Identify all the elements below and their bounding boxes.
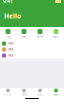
staticText: Title — [8, 54, 14, 57]
button[interactable]: Me — [48, 89, 64, 96]
button[interactable]: Stats — [32, 89, 48, 96]
staticText: Hello — [4, 12, 21, 20]
staticText: Scan — [21, 35, 26, 38]
button[interactable]: More — [48, 29, 64, 38]
staticText: Stats — [37, 93, 42, 96]
button[interactable]: Home — [0, 89, 16, 96]
staticText: 9:41 — [3, 0, 13, 5]
button[interactable]: Title — [0, 52, 64, 58]
button[interactable]: Pay — [0, 29, 16, 38]
staticText: More — [52, 35, 59, 38]
button[interactable]: Scan — [16, 29, 32, 38]
staticText: Cards — [20, 93, 27, 96]
staticText: Title — [8, 48, 14, 51]
staticText: Title — [8, 42, 14, 45]
button[interactable]: Title — [0, 40, 64, 46]
staticText: ▮▮▮ — [55, 0, 61, 3]
staticText: Me — [54, 93, 58, 96]
staticText: Send — [36, 35, 43, 38]
button[interactable]: Send — [32, 29, 48, 38]
button[interactable]: Cards — [16, 89, 32, 96]
button[interactable]: Title — [0, 46, 64, 52]
staticText: Home — [4, 93, 12, 96]
staticText: Pay — [6, 35, 10, 38]
